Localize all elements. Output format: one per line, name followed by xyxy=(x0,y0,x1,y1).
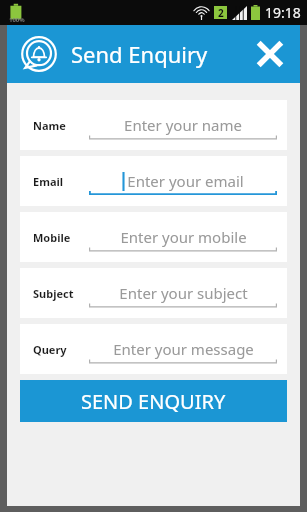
staticText: SEND ENQUIRY xyxy=(81,388,226,415)
button[interactable]: Query xyxy=(20,324,287,374)
staticText: Enter your message xyxy=(113,339,254,359)
staticText: 19:18 xyxy=(265,3,301,22)
button[interactable]: Email xyxy=(20,156,287,206)
button[interactable]: SEND ENQUIRY xyxy=(20,380,287,422)
staticText: Query xyxy=(33,342,89,357)
staticText: Enter your mobile xyxy=(120,227,247,247)
staticText: Enter your name xyxy=(124,115,242,135)
other: App logo xyxy=(19,34,59,74)
staticText: 2 xyxy=(218,6,224,19)
staticText: Enter your email xyxy=(127,171,244,191)
staticText: Enter your subject xyxy=(119,283,248,303)
staticText: Name xyxy=(33,118,89,133)
staticText: Send Enquiry xyxy=(71,39,208,69)
button[interactable]: Mobile xyxy=(20,212,287,262)
button[interactable]: Subject xyxy=(20,268,287,318)
staticText: 100% xyxy=(9,16,25,24)
staticText: Mobile xyxy=(33,230,89,245)
button[interactable]: Close xyxy=(248,32,292,76)
staticText: Email xyxy=(33,174,89,189)
button[interactable]: Name xyxy=(20,100,287,150)
staticText: Subject xyxy=(33,286,89,301)
